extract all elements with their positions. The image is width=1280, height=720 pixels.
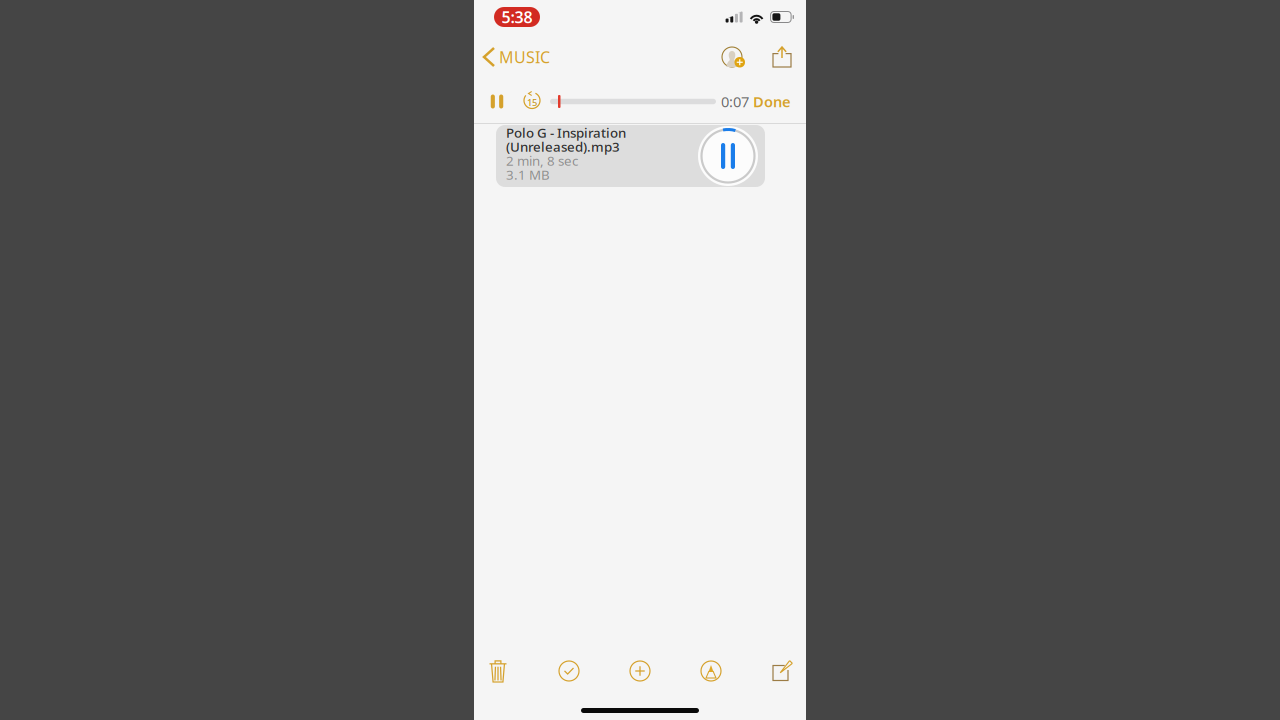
- staticText: 2 min, 8 sec: [506, 152, 578, 169]
- button[interactable]: Checklist: [544, 649, 594, 693]
- staticText: Polo G - Inspiration: [506, 124, 626, 141]
- button[interactable]: Markup: [686, 649, 736, 693]
- staticText: MUSIC: [499, 46, 550, 68]
- button[interactable]: Delete: [473, 649, 523, 693]
- button[interactable]: Add people: [701, 36, 763, 78]
- staticText: 5:38: [501, 6, 532, 28]
- button[interactable]: Polo G - Inspiration: [496, 125, 765, 187]
- button[interactable]: Back 15 seconds: [520, 80, 544, 123]
- button[interactable]: Pause: [474, 80, 520, 123]
- button[interactable]: Add attachment: [615, 649, 665, 693]
- button[interactable]: Done: [750, 80, 794, 123]
- staticText: Done: [753, 92, 791, 111]
- button[interactable]: MUSIC: [474, 38, 556, 76]
- staticText: 3.1 MB: [506, 166, 550, 183]
- staticText: 15: [527, 96, 537, 109]
- button[interactable]: Share: [763, 36, 801, 78]
- staticText: (Unreleased).mp3: [506, 138, 620, 155]
- staticText: 0:07: [721, 92, 749, 111]
- button[interactable]: Compose: [757, 649, 807, 693]
